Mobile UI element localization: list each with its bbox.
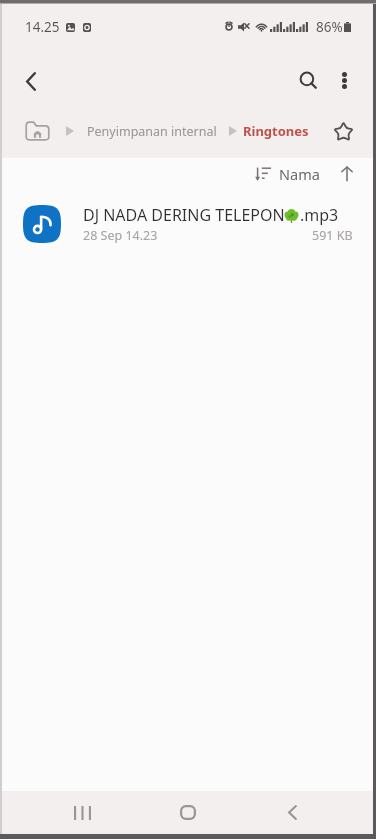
button[interactable]: Add to favourites	[327, 115, 359, 147]
staticText: 86%	[316, 18, 343, 36]
button[interactable]: Nama	[255, 164, 320, 184]
button[interactable]: Back	[240, 791, 345, 834]
button[interactable]: Ringtones	[243, 122, 309, 140]
button[interactable]: Penyimpanan internal	[87, 123, 217, 140]
staticText: 591 KB	[312, 227, 353, 244]
staticText: 14.25	[25, 18, 60, 36]
button[interactable]: Search	[290, 62, 326, 98]
staticText: 28 Sep 14.23	[83, 227, 158, 244]
button[interactable]: More options	[326, 62, 362, 98]
button[interactable]: Back	[9, 59, 53, 103]
staticText: Nama	[279, 164, 320, 184]
button[interactable]: Home	[135, 791, 240, 834]
staticText: DJ NADA DERING TELEPON	[83, 204, 285, 226]
button[interactable]: Sort ascending	[332, 159, 362, 189]
button[interactable]: Recent apps	[30, 791, 135, 834]
button[interactable]: Internal storage root	[25, 121, 50, 141]
staticText: .mp3	[300, 204, 339, 226]
button[interactable]: DJ NADA DERING TELEPON	[2, 196, 373, 252]
